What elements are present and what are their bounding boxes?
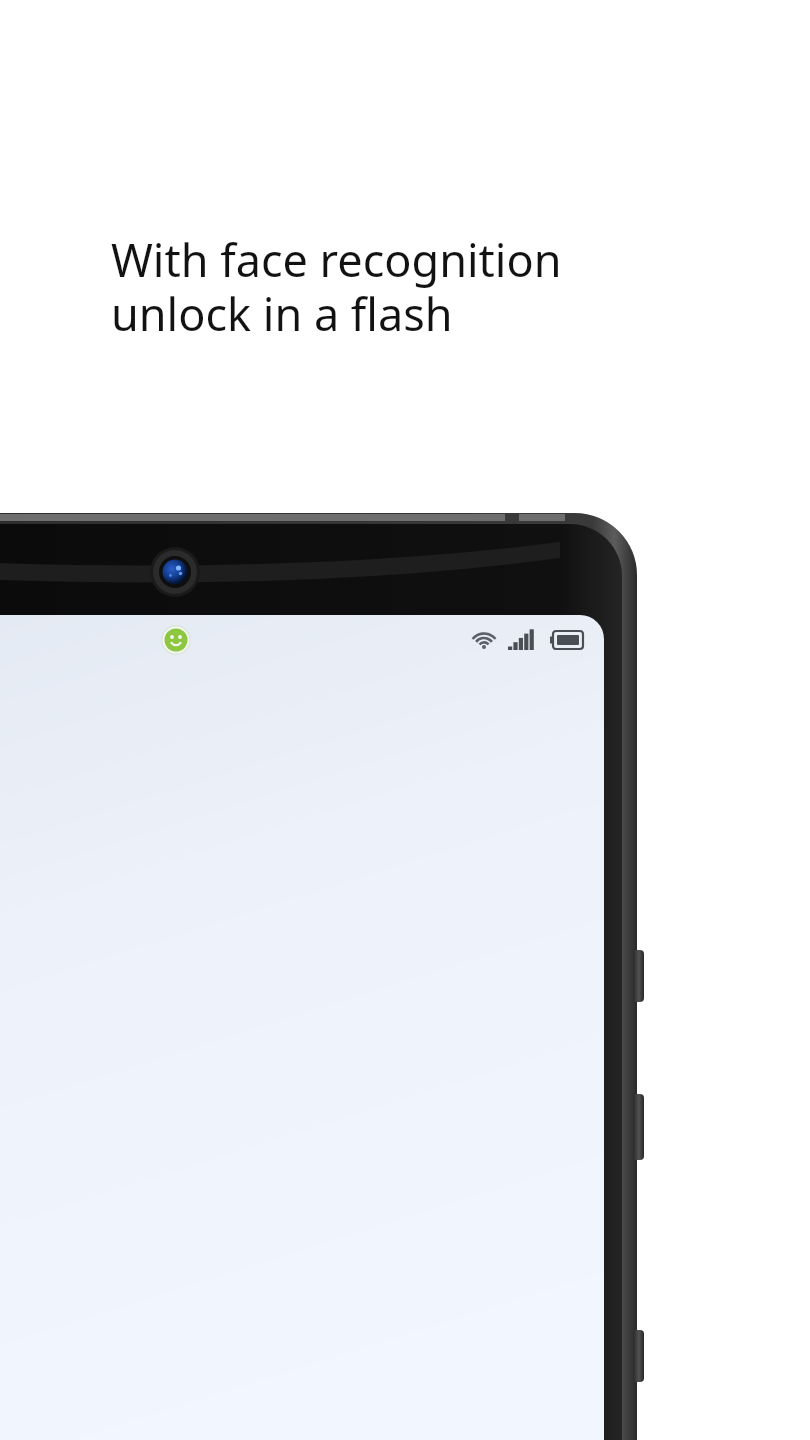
button[interactable]: Power <box>629 1326 645 1386</box>
button[interactable]: Wi-Fi <box>468 626 502 656</box>
button[interactable]: Notification <box>161 625 191 655</box>
staticText: With face recognition unlock in a flash <box>111 229 562 344</box>
button[interactable]: Volume up <box>629 946 645 1006</box>
button[interactable]: Battery <box>548 626 590 656</box>
button[interactable]: Volume down <box>629 1090 645 1164</box>
button[interactable]: Signal strength <box>504 626 538 656</box>
